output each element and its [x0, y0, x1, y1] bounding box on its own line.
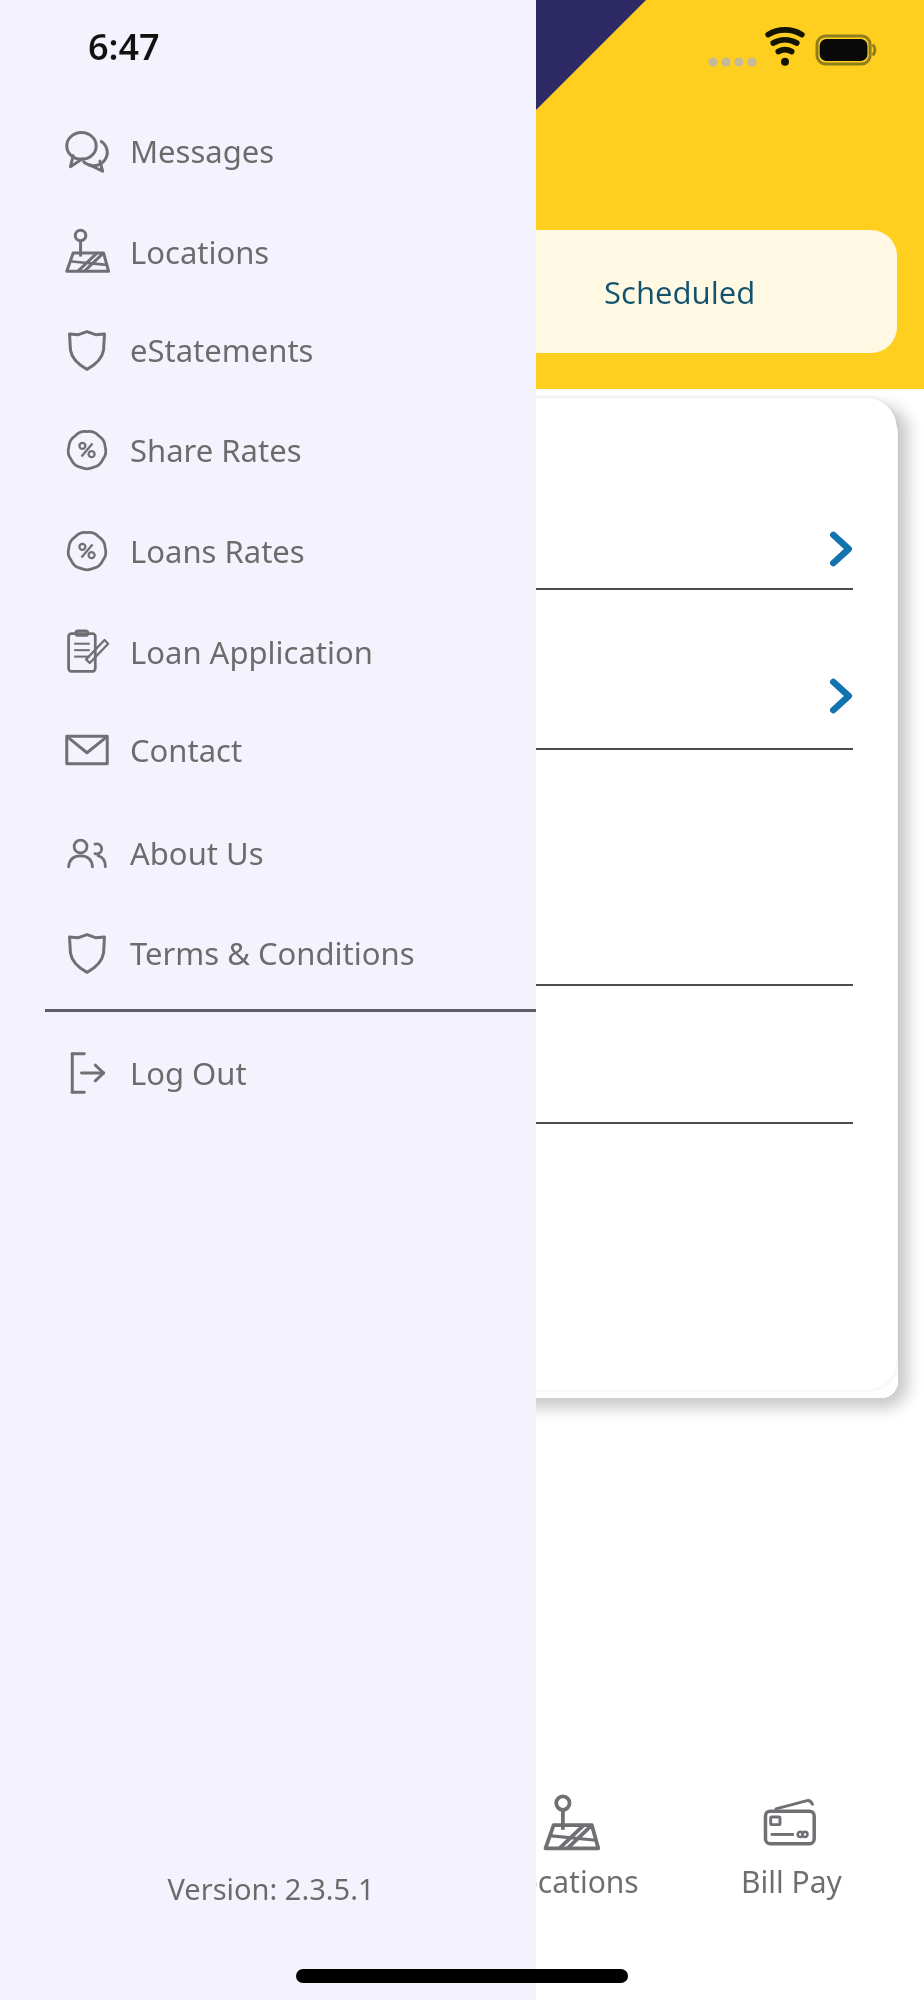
staticText: eStatements	[130, 329, 314, 371]
staticText: Bill Pay	[741, 1861, 842, 1902]
staticText: Scheduled	[604, 271, 756, 313]
staticText: 6:47	[88, 22, 160, 71]
button[interactable]: Share Rates	[45, 400, 525, 500]
staticText: Share Rates	[130, 429, 302, 471]
button[interactable]: Loan Application	[45, 602, 525, 702]
button[interactable]: Locations	[481, 1795, 661, 1920]
staticText: About Us	[130, 832, 264, 874]
button[interactable]: Messages	[45, 101, 525, 201]
button[interactable]: Terms & Conditions	[45, 903, 525, 1003]
button[interactable]: Locations	[45, 202, 525, 302]
staticText: Loans Rates	[130, 530, 305, 572]
staticText: Contact	[130, 729, 243, 771]
button[interactable]: Contact	[45, 700, 525, 800]
button[interactable]: Log Out	[45, 1023, 525, 1123]
staticText: Terms & Conditions	[130, 932, 415, 974]
staticText: Messages	[130, 130, 275, 172]
button[interactable]	[27, 590, 897, 749]
staticText: Loan Application	[130, 631, 373, 673]
staticText: Locations	[504, 1861, 639, 1902]
button[interactable]: Loans Rates	[45, 501, 525, 601]
staticText: Log Out	[130, 1052, 247, 1094]
button[interactable]: eStatements	[45, 300, 525, 400]
button[interactable]: About Us	[45, 803, 525, 903]
staticText: Locations	[130, 231, 270, 273]
staticText: Version: 2.3.5.1	[96, 1869, 446, 1908]
button[interactable]: Bill Pay	[701, 1795, 881, 1920]
button[interactable]	[27, 458, 897, 589]
button[interactable]: Scheduled	[462, 230, 897, 353]
